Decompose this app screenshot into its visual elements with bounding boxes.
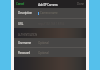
staticText: Cancel [16,2,25,6]
button[interactable]: Description [14,8,86,18]
button[interactable]: Done [75,0,86,8]
staticText: AUTHENTICATION [18,33,38,37]
button[interactable]: URL [14,19,86,28]
staticText: Add IP Camera [38,2,58,7]
staticText: Description [18,11,32,15]
staticText: URL [18,22,24,26]
button[interactable]: Password [14,48,86,57]
staticText: Optional [38,51,49,55]
staticText: Done [77,2,84,6]
button[interactable]: Cancel [14,0,27,8]
button[interactable]: Username [14,38,86,47]
staticText: Username [18,41,31,45]
staticText: Password [18,51,30,55]
staticText: Camera name [40,11,58,15]
staticText: Optional [38,41,49,45]
